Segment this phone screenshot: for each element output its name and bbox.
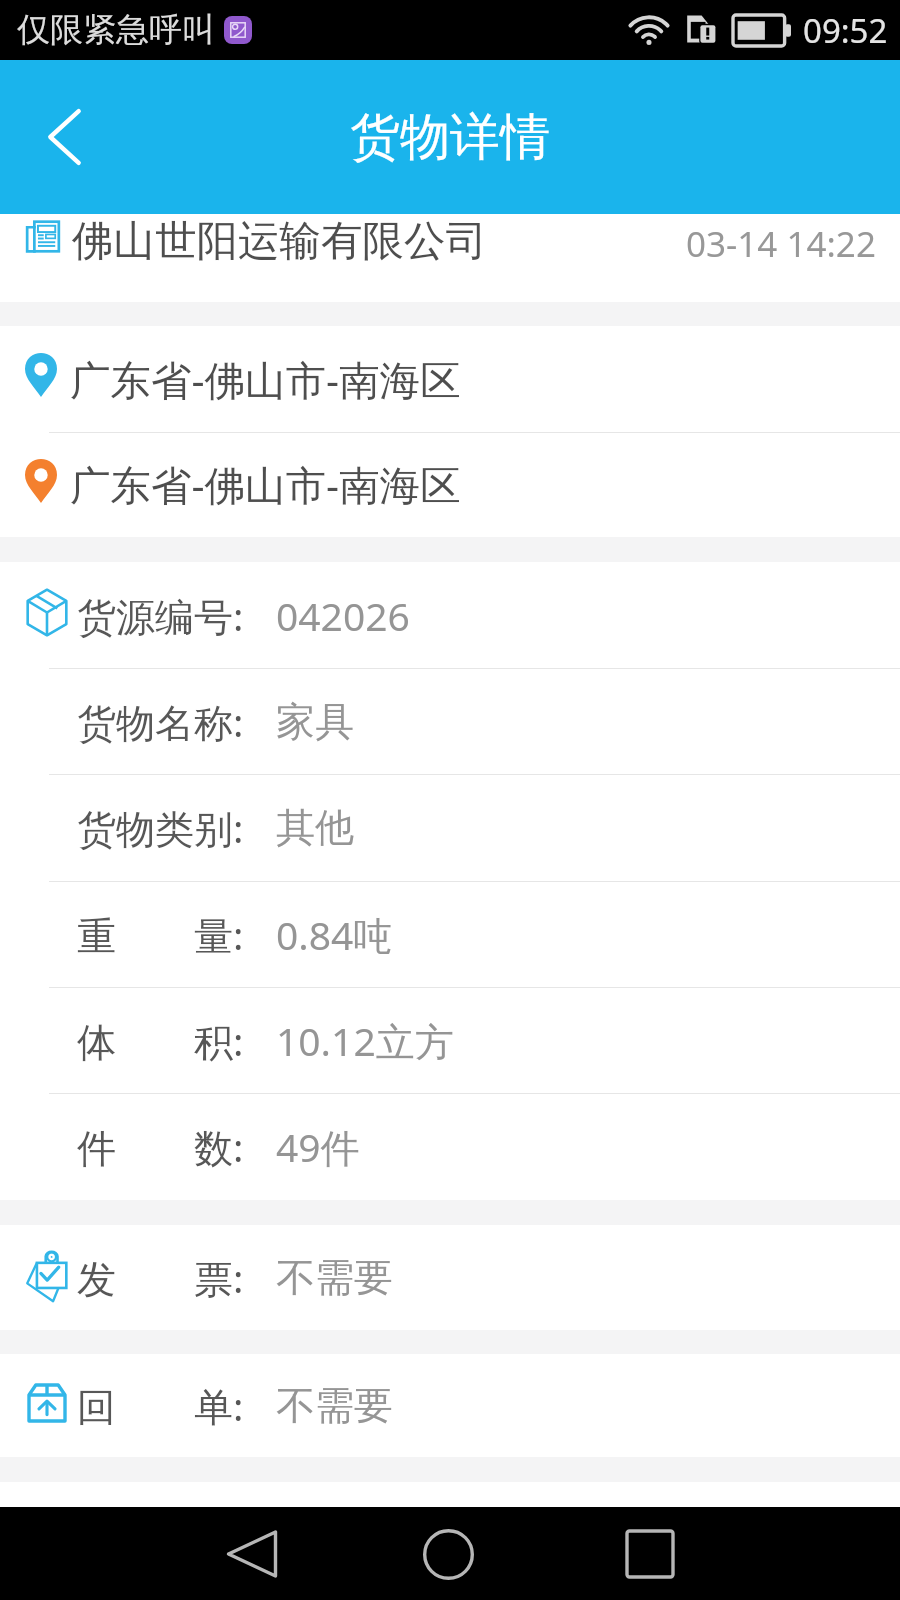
button[interactable]: 货源编号:	[0, 562, 900, 668]
staticText: 不需要	[276, 1253, 393, 1302]
button[interactable]: Home	[408, 1514, 488, 1594]
button[interactable]: 件 数:	[0, 1093, 900, 1200]
staticText: 发 票:	[77, 1251, 244, 1304]
staticText: 家具	[276, 697, 354, 746]
staticText: 042026	[276, 589, 410, 642]
staticText: 重 量:	[77, 908, 244, 961]
button[interactable]: 发 票:	[0, 1225, 900, 1330]
button[interactable]: 广东省-佛山市-南海区	[0, 326, 900, 432]
button[interactable]: 货物类别:	[0, 774, 900, 881]
staticText: 货源编号:	[77, 589, 244, 642]
staticText: 广东省-佛山市-南海区	[70, 457, 461, 512]
button[interactable]: Back	[212, 1514, 292, 1594]
button[interactable]: Back	[24, 97, 104, 177]
staticText: 49件	[276, 1120, 360, 1173]
button[interactable]: 重 量:	[0, 881, 900, 987]
staticText: 不需要	[276, 1381, 393, 1430]
staticText: 仅限紧急呼叫	[17, 9, 215, 51]
staticText: 件 数:	[77, 1120, 244, 1173]
staticText: 03-14 14:22	[686, 220, 876, 268]
button[interactable]: 回 单:	[0, 1354, 900, 1457]
button[interactable]: 货物名称:	[0, 668, 900, 774]
staticText: 回 单:	[77, 1379, 244, 1432]
button[interactable]: 体 积:	[0, 987, 900, 1093]
staticText: 货物详情	[350, 106, 550, 169]
button[interactable]: Recent apps	[610, 1514, 690, 1594]
staticText: 佛山世阳运输有限公司	[72, 215, 487, 267]
staticText: 10.12立方	[276, 1014, 454, 1067]
staticText: 货物名称:	[77, 695, 244, 748]
staticText: 其他	[276, 803, 354, 852]
staticText: 货物类别:	[77, 801, 244, 854]
button[interactable]: 广东省-佛山市-南海区	[0, 432, 900, 537]
staticText: 09:52	[803, 8, 888, 53]
button[interactable]: 佛山世阳运输有限公司	[0, 214, 900, 302]
staticText: 体 积:	[77, 1014, 244, 1067]
staticText: 广东省-佛山市-南海区	[70, 352, 461, 407]
staticText: 0.84吨	[276, 908, 393, 961]
